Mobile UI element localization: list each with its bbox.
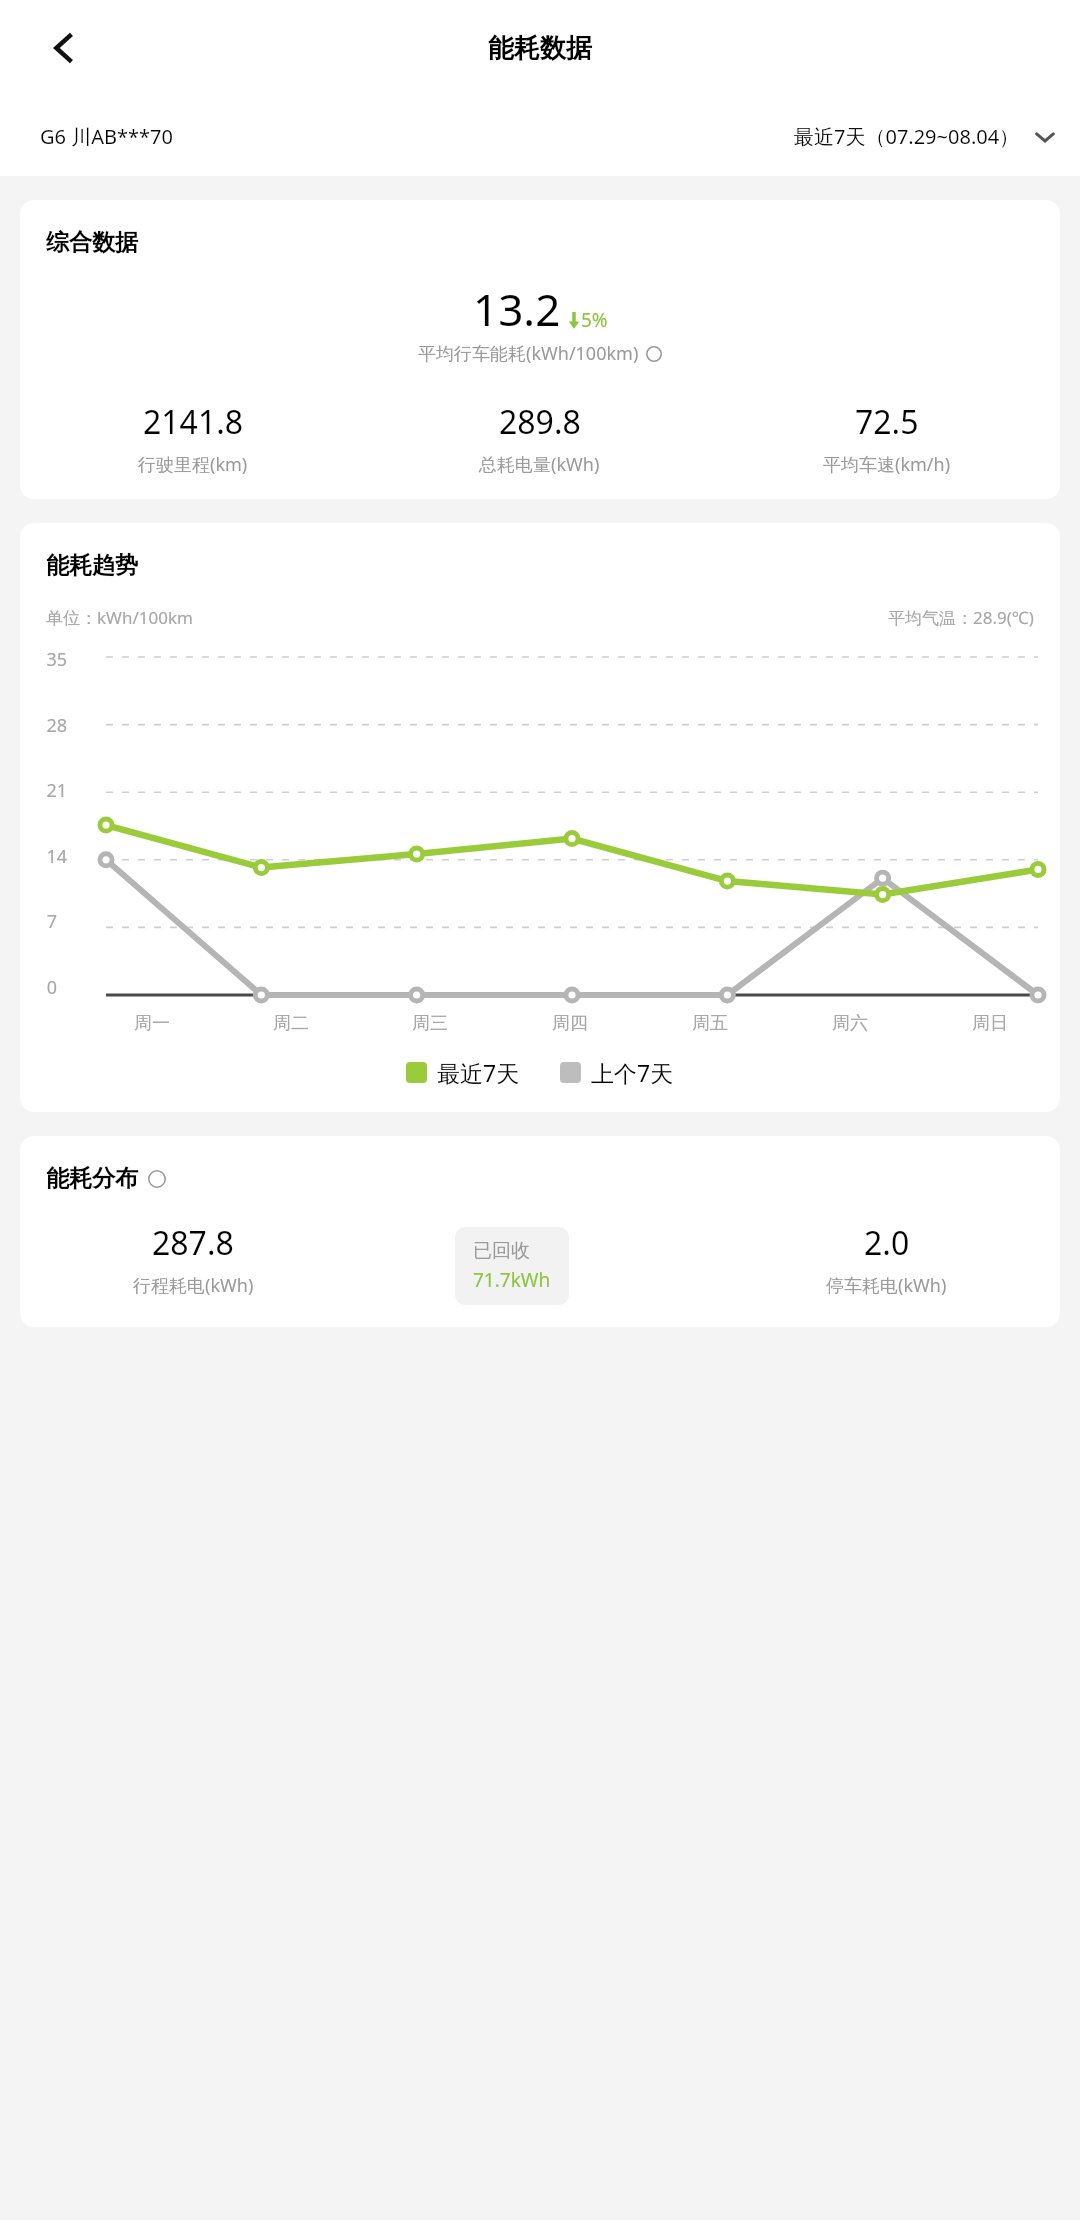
- staticText: 289.8: [499, 400, 581, 444]
- staticText: 平均行车能耗(kWh/100km): [418, 341, 639, 366]
- staticText: 综合数据: [46, 228, 138, 257]
- staticText: 周五: [692, 1012, 728, 1035]
- staticText: 13.2: [473, 279, 561, 339]
- button[interactable]: 最近7天（07.29~08.04）: [794, 123, 1056, 150]
- staticText: 周日: [972, 1012, 1008, 1035]
- staticText: 28: [46, 713, 67, 733]
- staticText: 2.0: [864, 1221, 910, 1265]
- staticText: 行驶里程(km): [138, 452, 248, 477]
- staticText: 能耗分布: [46, 1164, 138, 1193]
- staticText: 周二: [273, 1012, 309, 1035]
- staticText: 7: [46, 909, 57, 929]
- staticText: 14: [46, 844, 67, 864]
- staticText: 2141.8: [143, 400, 244, 444]
- staticText: 0: [46, 975, 57, 995]
- staticText: 停车耗电(kWh): [826, 1273, 947, 1298]
- staticText: 能耗数据: [488, 32, 592, 65]
- button[interactable]: Help: [148, 1170, 166, 1188]
- staticText: 单位：kWh/100km: [46, 606, 193, 629]
- staticText: 5%: [581, 307, 608, 333]
- staticText: 已回收: [473, 1239, 530, 1263]
- staticText: 行程耗电(kWh): [133, 1273, 254, 1298]
- staticText: 最近7天（07.29~08.04）: [794, 123, 1020, 150]
- staticText: 周三: [412, 1012, 448, 1035]
- button[interactable]: 最近7天: [406, 1057, 520, 1088]
- staticText: 71.7kWh: [473, 1267, 551, 1293]
- staticText: 总耗电量(kWh): [479, 452, 600, 477]
- button[interactable]: 上个7天: [560, 1057, 674, 1088]
- staticText: 平均气温：28.9(℃): [888, 606, 1034, 629]
- staticText: 最近7天: [437, 1057, 520, 1088]
- staticText: 上个7天: [591, 1057, 674, 1088]
- staticText: 周四: [552, 1012, 588, 1035]
- staticText: 72.5: [855, 400, 919, 444]
- staticText: 287.8: [152, 1221, 234, 1265]
- staticText: 35: [46, 647, 67, 667]
- button[interactable]: Back: [36, 20, 92, 76]
- staticText: 平均车速(km/h): [823, 452, 951, 477]
- staticText: 周一: [134, 1012, 170, 1035]
- staticText: 能耗趋势: [46, 551, 138, 580]
- staticText: 周六: [832, 1012, 868, 1035]
- staticText: 21: [46, 778, 67, 798]
- staticText: G6 川AB***70: [40, 123, 173, 150]
